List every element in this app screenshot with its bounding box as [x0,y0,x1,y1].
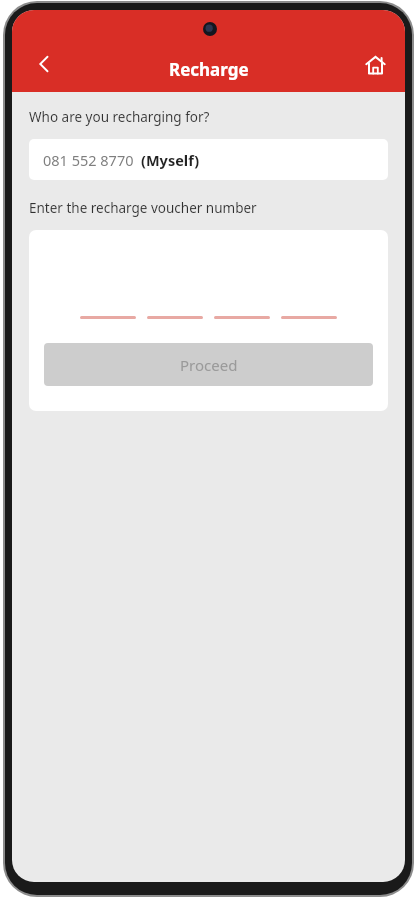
staticText: Who are you recharging for? [29,108,210,126]
staticText: Enter the recharge voucher number [29,199,257,217]
button[interactable]: 081 552 8770 (Myself) [29,139,388,180]
button[interactable]: Home [353,43,397,87]
staticText: 081 552 8770 (Myself) [43,150,200,170]
button[interactable]: Voucher number input [29,230,388,343]
button[interactable]: Proceed [44,343,373,386]
staticText: Proceed [180,355,238,375]
staticText: Recharge [169,58,249,81]
button[interactable]: Back [22,42,66,86]
